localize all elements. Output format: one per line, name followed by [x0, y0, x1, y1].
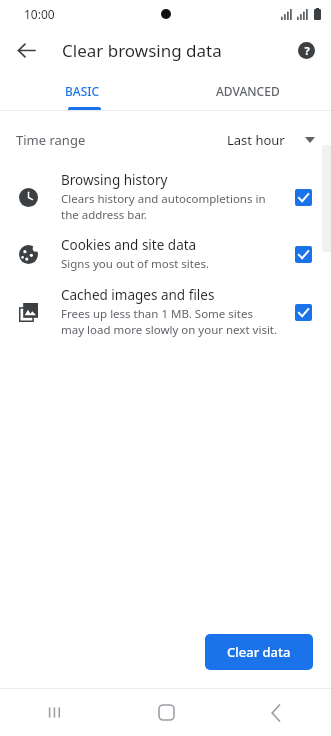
button[interactable]: BASIC: [0, 72, 165, 110]
button[interactable]: Back: [8, 32, 44, 68]
staticText: Cached images and files: [61, 286, 215, 304]
staticText: ADVANCED: [216, 83, 280, 99]
button[interactable]: Cached images and files: [0, 286, 331, 337]
button[interactable]: ADVANCED: [165, 72, 331, 110]
staticText: Cookies and site data: [61, 236, 197, 254]
button[interactable]: Cookies and site data: [289, 240, 317, 268]
staticText: 10:00: [24, 6, 55, 22]
staticText: Clear browsing data: [62, 39, 222, 62]
staticText: Clears history and autocompletions in th…: [61, 191, 266, 222]
button[interactable]: Cookies and site data: [0, 236, 331, 272]
button[interactable]: Browsing history: [0, 171, 331, 222]
button[interactable]: Back: [221, 689, 331, 736]
staticText: BASIC: [65, 83, 100, 99]
staticText: Browsing history: [61, 171, 168, 189]
staticText: ?: [304, 43, 310, 58]
staticText: Frees up less than 1 MB. Some sites may …: [61, 306, 278, 337]
button[interactable]: Recents: [0, 689, 111, 736]
button[interactable]: Browsing history: [289, 183, 317, 211]
staticText: Signs you out of most sites.: [61, 256, 210, 272]
button[interactable]: Clear data: [205, 634, 313, 670]
button[interactable]: Time range: [0, 123, 331, 157]
staticText: Last hour: [227, 131, 285, 149]
staticText: Clear data: [227, 643, 291, 661]
staticText: Time range: [16, 131, 86, 149]
button[interactable]: Home: [111, 689, 221, 736]
button[interactable]: Help: [289, 33, 323, 67]
button[interactable]: Cached images and files: [289, 298, 317, 326]
